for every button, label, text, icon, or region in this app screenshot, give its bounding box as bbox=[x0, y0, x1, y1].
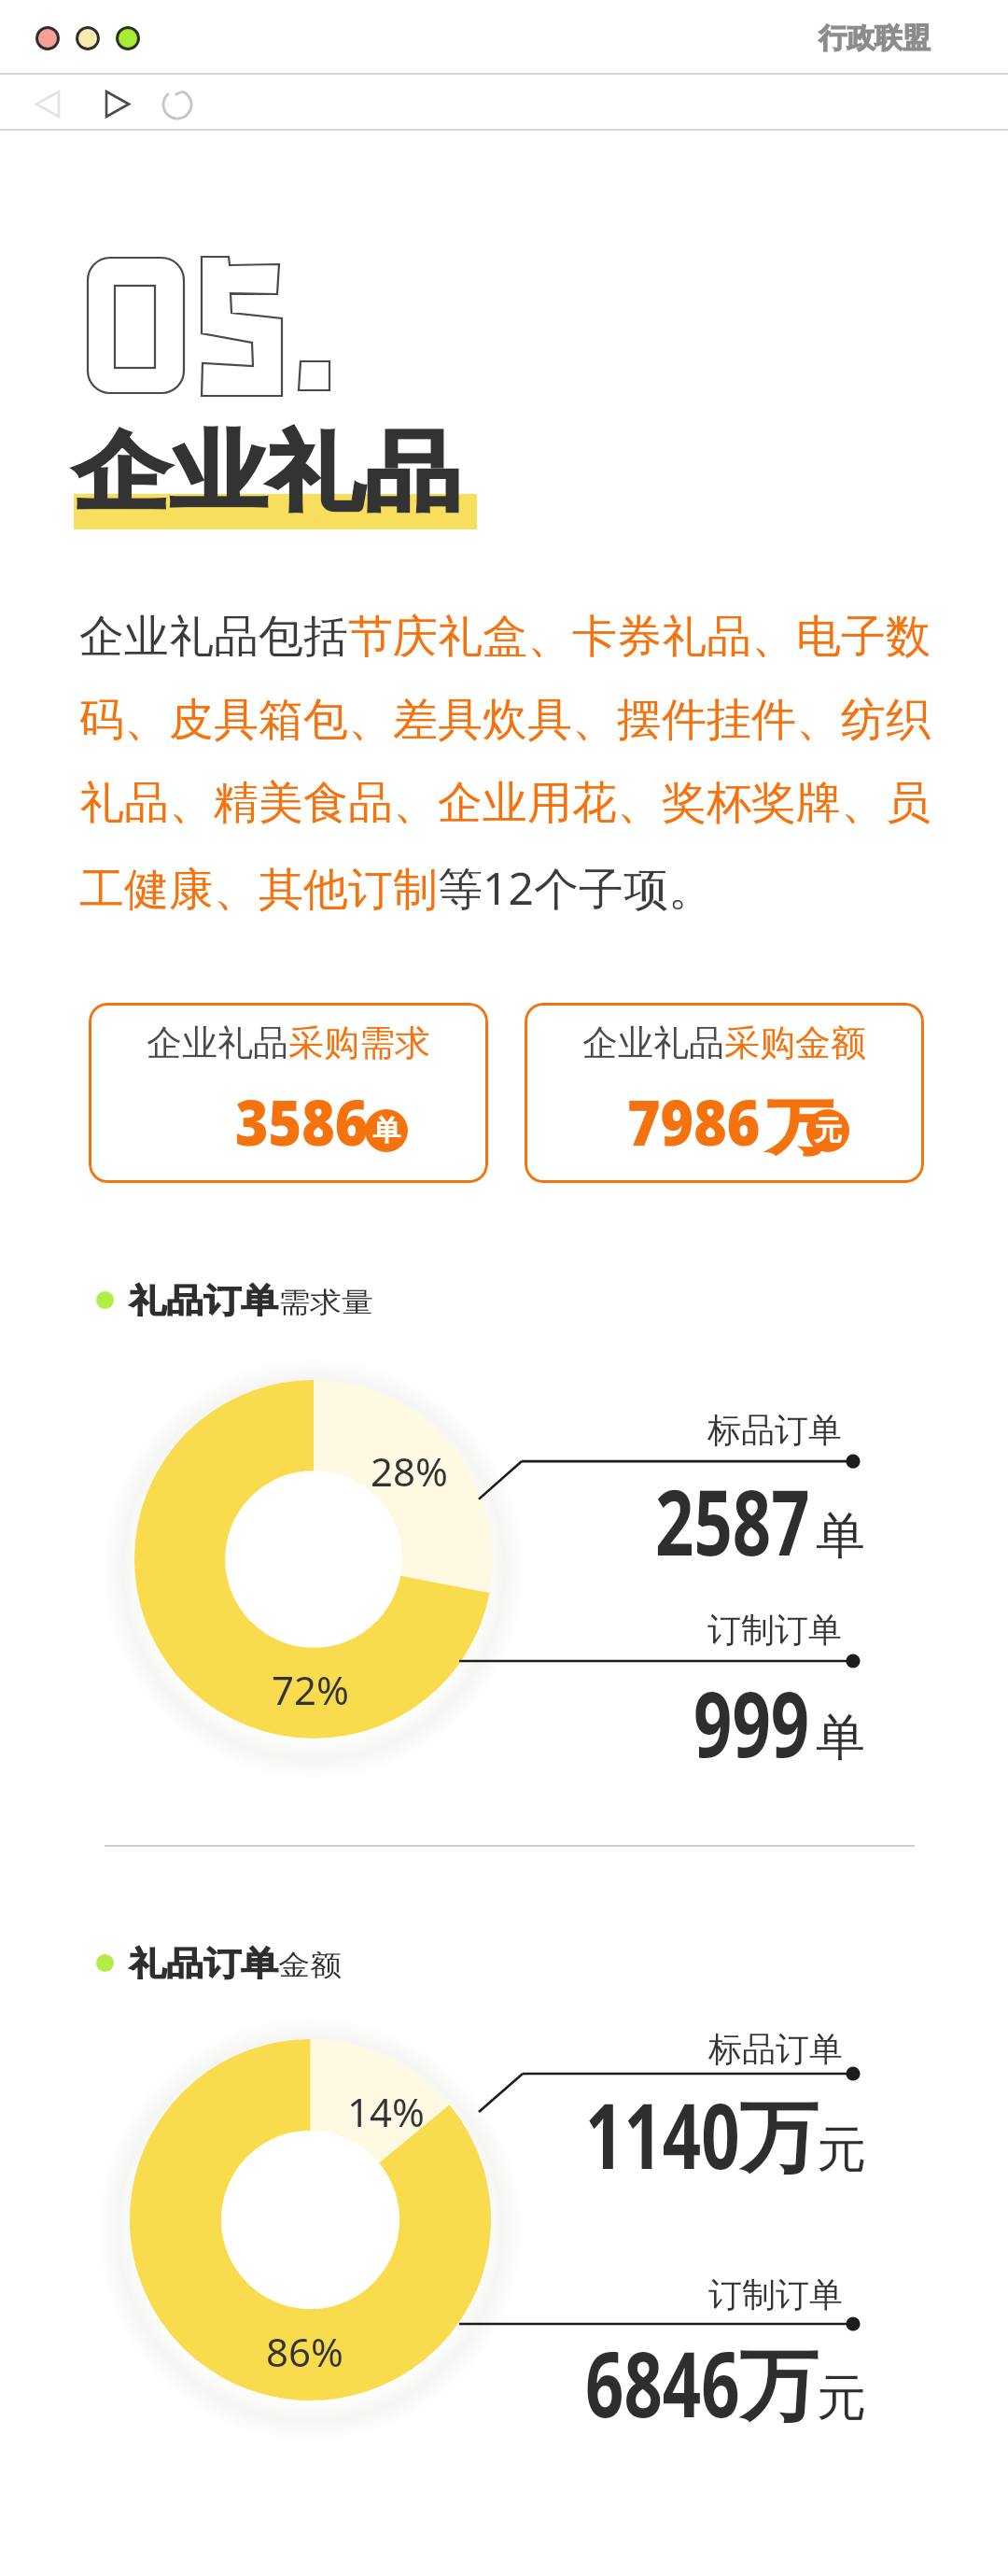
staticText: 单 bbox=[816, 1505, 865, 1568]
staticText: 28% bbox=[371, 1444, 448, 1498]
staticText: 企业礼品包括节庆礼盒、卡券礼品、电子数码、皮具箱包、差具炊具、摆件挂件、纺织礼品… bbox=[79, 609, 947, 918]
staticText: 企业礼品 bbox=[73, 419, 461, 527]
staticText: 86% bbox=[266, 2325, 343, 2378]
staticText: 万 bbox=[739, 2089, 818, 2187]
staticText: 订制订单 bbox=[469, 2273, 843, 2316]
staticText: 礼品订单需求量 bbox=[129, 1280, 373, 1321]
staticText: 3586 bbox=[235, 1078, 368, 1164]
staticText: 标品订单 bbox=[469, 2028, 843, 2070]
button[interactable]: Reload bbox=[155, 75, 200, 120]
staticText: 礼品订单金额 bbox=[129, 1943, 342, 1984]
staticText: 元 bbox=[817, 2119, 866, 2181]
staticText: 企业礼品采购金额 bbox=[582, 1021, 866, 1065]
staticText: 订制订单 bbox=[469, 1609, 842, 1651]
staticText: 元 bbox=[817, 2367, 866, 2429]
staticText: 999 bbox=[693, 1661, 810, 1783]
button[interactable]: 企业礼品采购金额 bbox=[525, 1003, 924, 1183]
staticText: 1140 bbox=[585, 2073, 740, 2195]
staticText: 万 bbox=[767, 1091, 833, 1165]
staticText: 6846 bbox=[585, 2321, 740, 2443]
button[interactable]: 企业礼品采购需求 bbox=[89, 1003, 488, 1183]
button[interactable]: Forward bbox=[95, 75, 140, 120]
staticText: 2587 bbox=[655, 1459, 810, 1581]
staticText: 企业礼品采购需求 bbox=[147, 1021, 430, 1065]
staticText: 14% bbox=[347, 2085, 425, 2138]
staticText: 行政联盟 bbox=[819, 21, 931, 56]
staticText: 万 bbox=[739, 2337, 818, 2436]
staticText: 7986 bbox=[627, 1078, 760, 1164]
staticText: 单 bbox=[372, 1113, 400, 1148]
button[interactable]: Back bbox=[25, 75, 70, 120]
staticText: 标品订单 bbox=[469, 1409, 842, 1451]
staticText: 单 bbox=[816, 1707, 865, 1769]
staticText: 72% bbox=[272, 1663, 349, 1716]
staticText: 元 bbox=[814, 1113, 842, 1148]
